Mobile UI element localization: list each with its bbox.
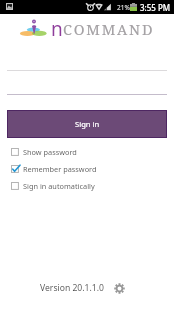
button[interactable]: Password (7, 76, 167, 95)
button[interactable]: Remember password (0, 162, 174, 176)
button[interactable]: Show password (0, 145, 174, 159)
staticText: Show password (23, 147, 77, 157)
staticText: COMMAND (63, 19, 155, 39)
button[interactable]: Sign in (7, 110, 167, 138)
button[interactable]: Sign in automatically (0, 179, 174, 193)
staticText: n (51, 16, 63, 42)
staticText: Sign in automatically (23, 181, 95, 191)
button[interactable]: Settings (112, 281, 126, 295)
staticText: 21% (117, 3, 130, 12)
staticText: Remember password (23, 164, 97, 174)
staticText: Version 20.1.1.0 (40, 282, 104, 294)
staticText: 3:55 PM (140, 2, 171, 13)
button[interactable]: User name (7, 52, 167, 71)
staticText: Sign in (75, 119, 100, 129)
